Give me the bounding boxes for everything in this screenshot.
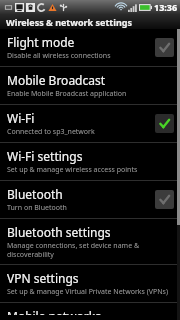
button[interactable]: On: [155, 114, 174, 133]
button[interactable]: Flight mode: [0, 29, 180, 66]
staticText: VPN settings: [7, 270, 79, 286]
button[interactable]: Bluetooth: [0, 181, 180, 218]
staticText: Connected to sp3_network: [7, 127, 95, 137]
button[interactable]: Off: [155, 38, 174, 57]
staticText: Wi-Fi: [7, 110, 35, 126]
staticText: Bluetooth: [7, 186, 63, 202]
staticText: Manage connections, set device name & di…: [7, 241, 174, 259]
staticText: Turn on Bluetooth: [7, 203, 67, 213]
staticText: Enable Mobile Broadcast application: [7, 89, 127, 99]
button[interactable]: Mobile networks: [0, 303, 180, 320]
staticText: Wi-Fi settings: [7, 148, 83, 164]
staticText: Disable all wireless connections: [7, 51, 111, 61]
button[interactable]: VPN settings: [0, 265, 180, 302]
button[interactable]: Wi-Fi settings: [0, 143, 180, 180]
staticText: Mobile networks: [7, 308, 101, 315]
button[interactable]: Bluetooth settings: [0, 219, 180, 264]
staticText: Flight mode: [7, 34, 75, 50]
staticText: Wireless & network settings: [6, 16, 132, 28]
staticText: Set up & manage wireless access points: [7, 165, 138, 175]
staticText: Set up & manage Virtual Private Networks…: [7, 287, 168, 297]
staticText: Bluetooth settings: [7, 224, 111, 240]
button[interactable]: Off: [155, 190, 174, 209]
button[interactable]: Wi-Fi: [0, 105, 180, 142]
staticText: 13:36: [154, 1, 178, 13]
staticText: Mobile Broadcast: [7, 72, 106, 88]
button[interactable]: Mobile Broadcast: [0, 67, 180, 104]
